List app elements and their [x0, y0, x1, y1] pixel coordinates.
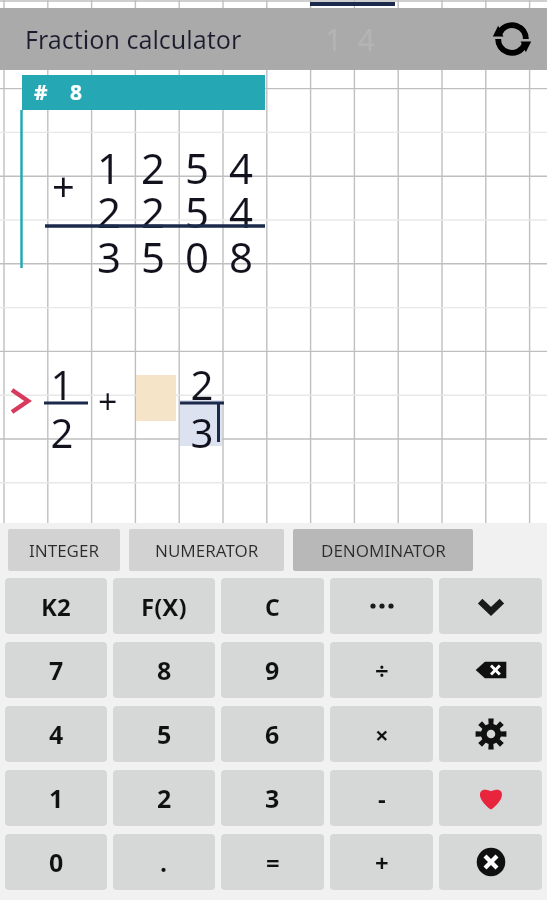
button[interactable]: C — [221, 578, 324, 634]
staticText: . — [160, 845, 168, 879]
staticText: ÷ — [375, 654, 389, 687]
button[interactable]: Hide keyboard — [439, 578, 542, 634]
button[interactable]: Settings — [439, 706, 542, 762]
button[interactable]: More — [330, 578, 433, 634]
button[interactable]: × — [330, 706, 433, 762]
staticText: 3 — [94, 228, 124, 285]
staticText: # — [34, 78, 48, 107]
staticText: 4 — [226, 139, 256, 196]
staticText: + — [375, 846, 389, 879]
staticText: 8 — [70, 78, 83, 107]
staticText: Fraction calculator — [25, 22, 242, 56]
staticText: 1 — [49, 781, 64, 815]
button[interactable]: 1 — [5, 770, 107, 826]
staticText: 2 — [157, 781, 172, 815]
button[interactable]: ÷ — [330, 642, 433, 698]
staticText: 1 — [94, 139, 124, 196]
button[interactable]: 8 — [113, 642, 215, 698]
button[interactable]: 0 — [5, 834, 107, 890]
button[interactable]: Favorite — [439, 770, 542, 826]
staticText: × — [375, 718, 389, 751]
button[interactable]: 6 — [221, 706, 324, 762]
button[interactable]: Clear — [439, 834, 542, 890]
button[interactable]: # — [22, 75, 265, 110]
staticText: NUMERATOR — [155, 539, 259, 562]
staticText: 0 — [182, 228, 212, 285]
button[interactable]: 3 — [221, 770, 324, 826]
staticText: DENOMINATOR — [321, 539, 446, 562]
button[interactable]: 2 — [113, 770, 215, 826]
staticText: 5 — [182, 183, 212, 240]
staticText: 5 — [182, 139, 212, 196]
staticText: 1 — [46, 357, 78, 411]
staticText: 8 — [157, 653, 172, 687]
staticText: C — [265, 591, 280, 622]
button[interactable]: K2 — [5, 578, 107, 634]
button[interactable]: DENOMINATOR — [293, 529, 473, 571]
button[interactable]: INTEGER — [8, 529, 120, 571]
staticText: K2 — [41, 590, 71, 623]
staticText: 4 — [49, 717, 64, 751]
button[interactable]: 5 — [113, 706, 215, 762]
staticText: F(X) — [141, 590, 187, 623]
staticText: 4 — [226, 183, 256, 240]
button[interactable]: + — [330, 834, 433, 890]
staticText: + — [52, 158, 75, 212]
staticText: - — [378, 782, 386, 815]
staticText: 2 — [186, 357, 218, 411]
staticText: 2 — [138, 139, 168, 196]
staticText: = — [266, 846, 280, 879]
staticText: 9 — [265, 653, 280, 687]
staticText: 7 — [49, 653, 64, 687]
button[interactable]: = — [221, 834, 324, 890]
button[interactable]: Backspace — [439, 642, 542, 698]
staticText: 8 — [226, 228, 256, 285]
staticText: + — [98, 378, 118, 424]
button[interactable]: - — [330, 770, 433, 826]
button[interactable]: . — [113, 834, 215, 890]
staticText: 2 — [46, 405, 78, 459]
staticText: 5 — [157, 717, 172, 751]
button[interactable]: NUMERATOR — [129, 529, 284, 571]
staticText: 6 — [265, 717, 280, 751]
button[interactable]: F(X) — [113, 578, 215, 634]
staticText: 0 — [49, 845, 64, 879]
staticText: 3 — [186, 405, 218, 459]
button[interactable]: Refresh — [485, 12, 539, 66]
staticText: 5 — [138, 228, 168, 285]
button[interactable]: 4 — [5, 706, 107, 762]
staticText: 2 — [138, 183, 168, 240]
staticText: 2 — [94, 183, 124, 240]
button[interactable]: 9 — [221, 642, 324, 698]
staticText: 3 — [265, 781, 280, 815]
staticText: INTEGER — [29, 539, 99, 562]
button[interactable]: 7 — [5, 642, 107, 698]
